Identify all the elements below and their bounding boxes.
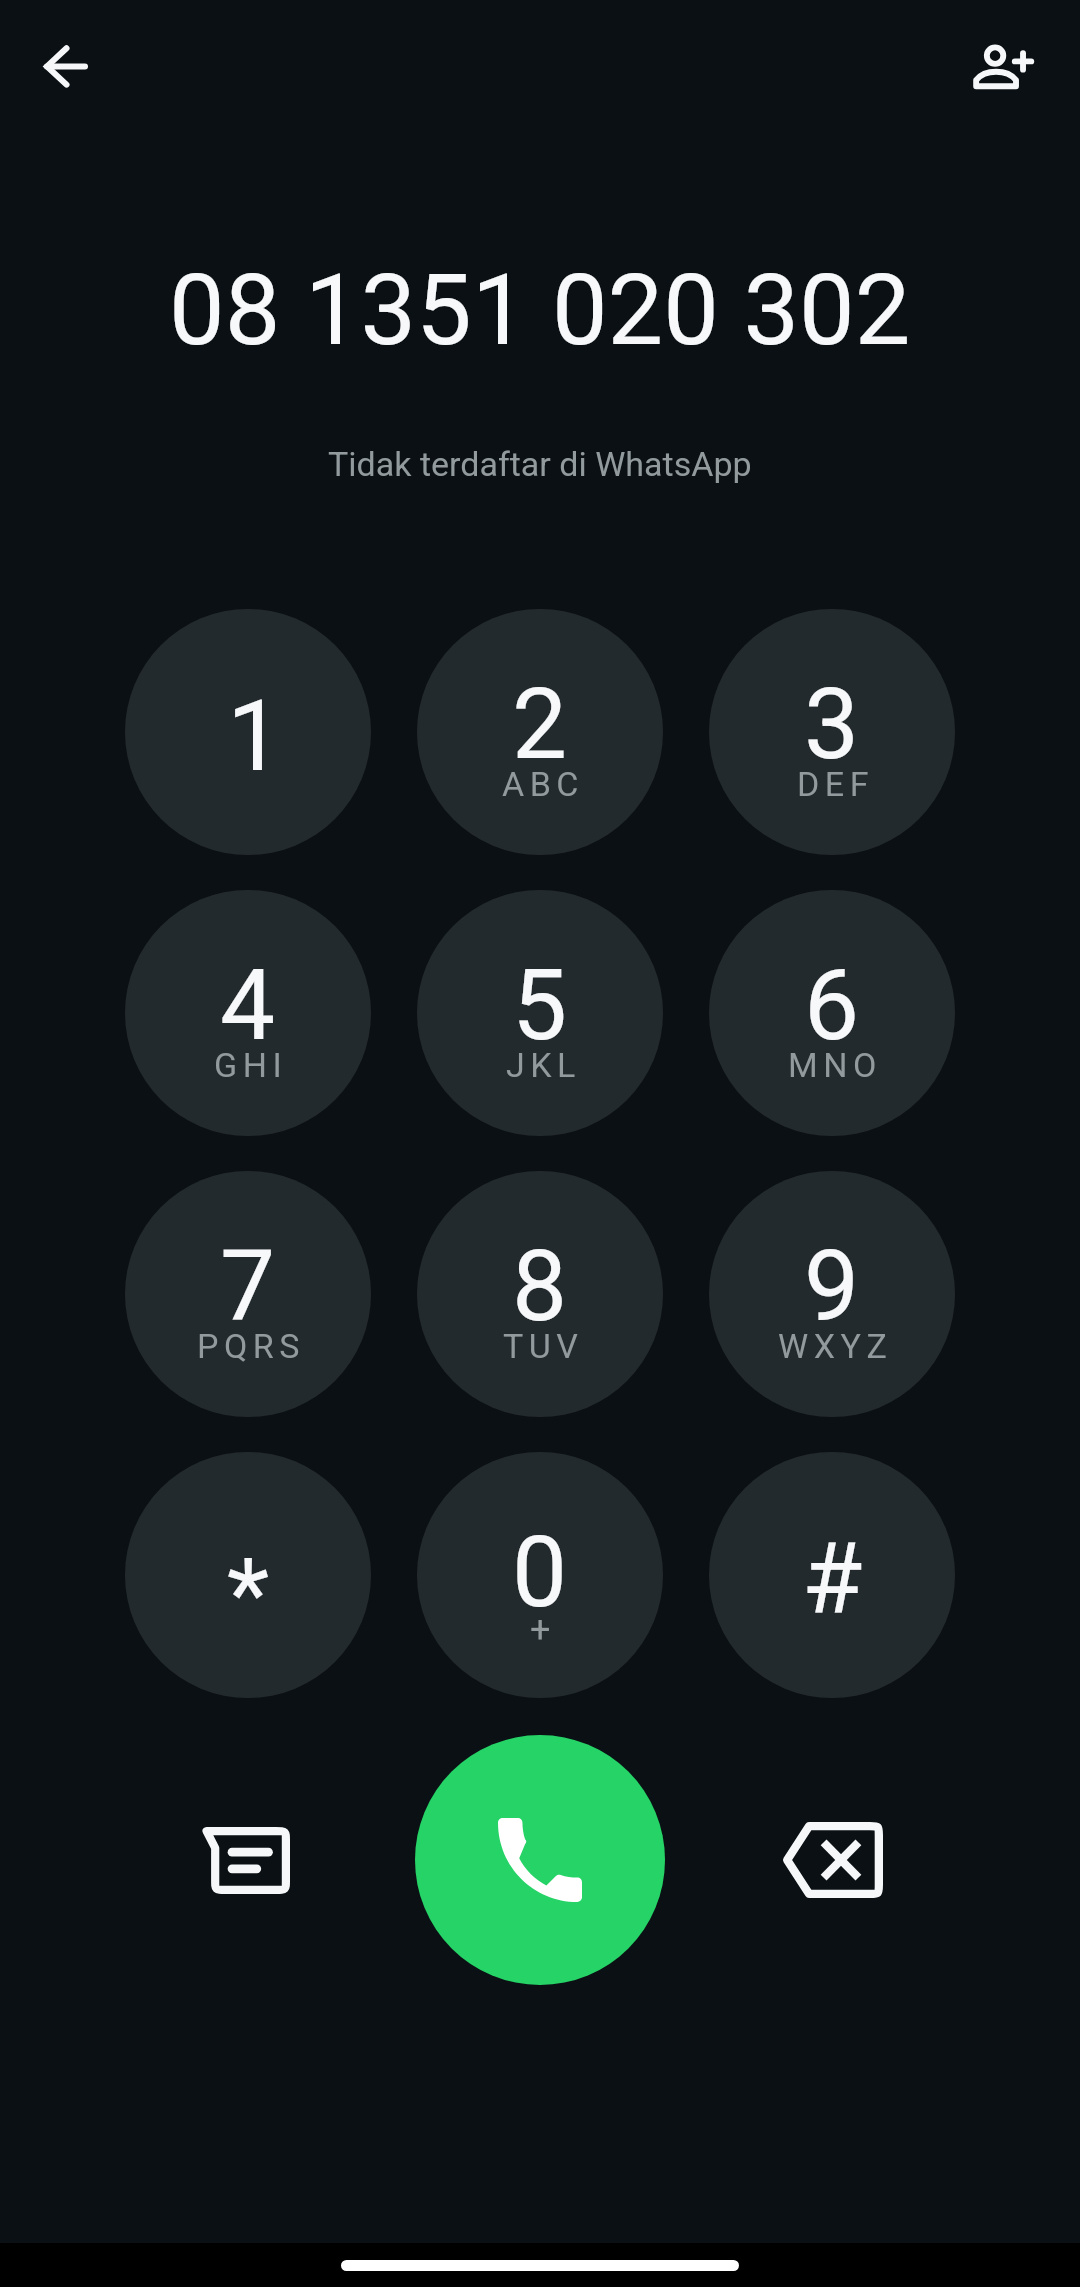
- button[interactable]: 4: [125, 890, 371, 1136]
- button[interactable]: 0: [417, 1452, 663, 1698]
- button[interactable]: 6: [709, 890, 955, 1136]
- button[interactable]: 9: [709, 1171, 955, 1417]
- staticText: 5: [512, 948, 568, 1063]
- staticText: 3: [804, 667, 860, 782]
- staticText: JKL: [506, 1045, 581, 1085]
- button[interactable]: Add to contacts: [964, 27, 1042, 105]
- button[interactable]: #: [709, 1452, 955, 1698]
- button[interactable]: Send message: [180, 1794, 312, 1926]
- staticText: WXYZ: [778, 1326, 893, 1366]
- staticText: #: [802, 1522, 863, 1637]
- staticText: ABC: [502, 764, 584, 804]
- button[interactable]: Call: [415, 1735, 665, 1985]
- staticText: 1: [227, 679, 283, 794]
- staticText: TUV: [503, 1326, 584, 1366]
- button[interactable]: 2: [417, 609, 663, 855]
- staticText: PQRS: [197, 1326, 305, 1366]
- button[interactable]: 1: [125, 609, 371, 855]
- staticText: 8: [512, 1229, 568, 1344]
- button[interactable]: Backspace: [767, 1794, 899, 1926]
- staticText: 0: [512, 1515, 568, 1630]
- button[interactable]: *: [125, 1452, 371, 1698]
- staticText: +: [530, 1609, 551, 1651]
- staticText: Tidak terdaftar di WhatsApp: [328, 444, 752, 484]
- staticText: MNO: [788, 1045, 882, 1085]
- staticText: 4: [220, 948, 276, 1063]
- staticText: DEF: [797, 764, 874, 804]
- staticText: 7: [220, 1229, 276, 1344]
- staticText: 2: [512, 667, 568, 782]
- button[interactable]: 8: [417, 1171, 663, 1417]
- button[interactable]: Back: [27, 28, 105, 106]
- staticText: 08 1351 020 302: [169, 252, 911, 368]
- staticText: 6: [804, 948, 860, 1063]
- staticText: 9: [804, 1229, 860, 1344]
- button[interactable]: 7: [125, 1171, 371, 1417]
- button[interactable]: 5: [417, 890, 663, 1136]
- staticText: GHI: [214, 1045, 288, 1085]
- staticText: *: [227, 1537, 270, 1652]
- button[interactable]: 3: [709, 609, 955, 855]
